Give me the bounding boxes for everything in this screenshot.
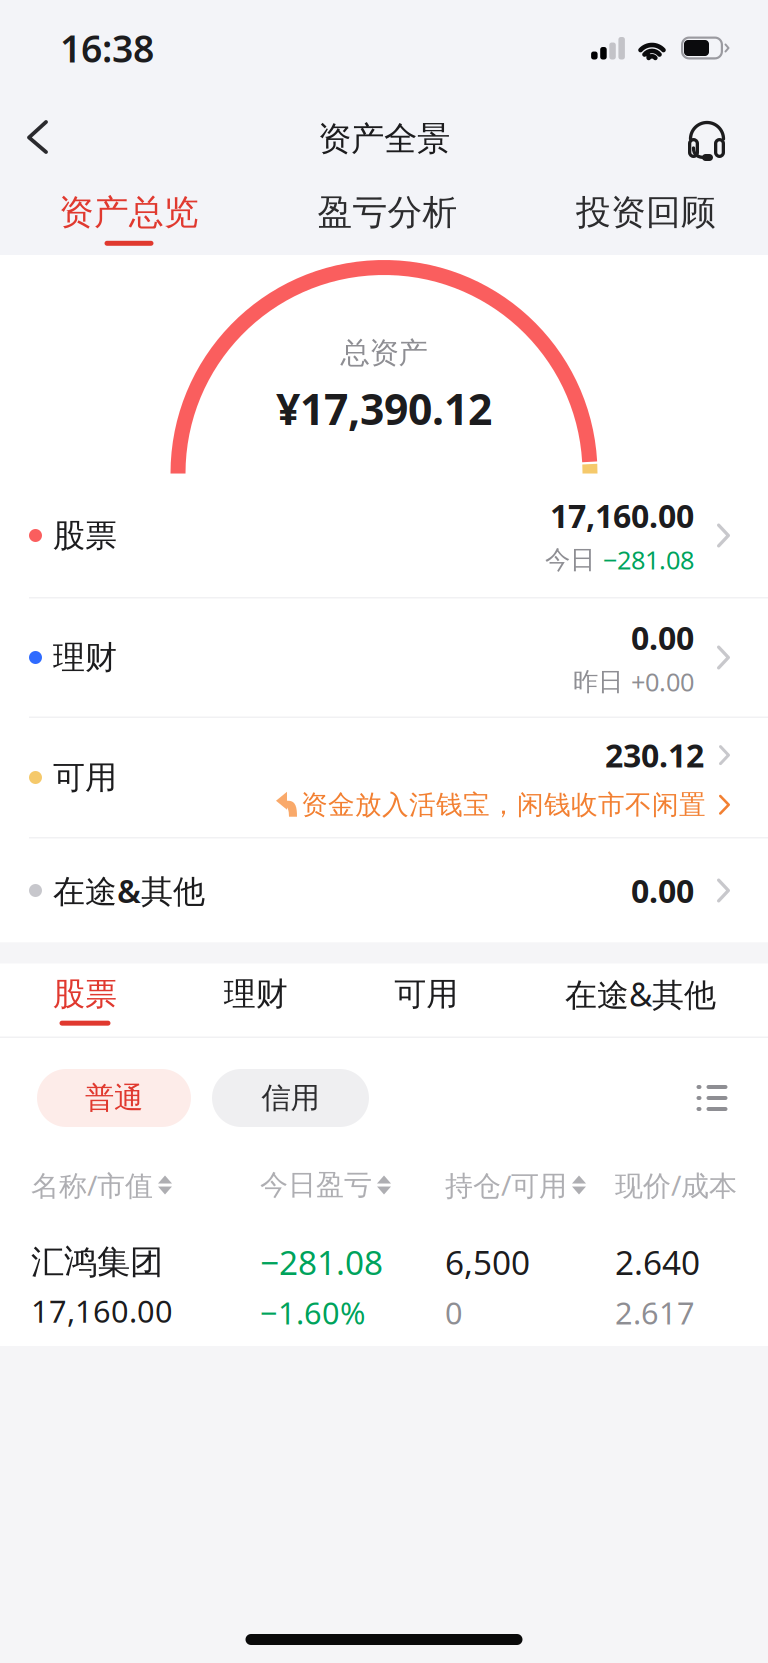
staticText: −1.60% — [260, 1292, 365, 1333]
button[interactable]: 返回 — [4, 96, 76, 182]
button[interactable]: 可用 — [0, 718, 768, 837]
staticText: −281.08 — [603, 543, 694, 576]
staticText: 在途&其他 — [565, 973, 716, 1015]
button[interactable]: 普通 — [37, 1069, 191, 1127]
staticText: +0.00 — [631, 665, 694, 698]
staticText: 0.00 — [631, 616, 694, 659]
staticText: 总资产 — [340, 335, 427, 371]
staticText: 资产全景 — [318, 118, 450, 159]
staticText: 16:38 — [60, 23, 154, 73]
staticText: 理财 — [224, 974, 288, 1014]
staticText: 可用 — [53, 758, 117, 797]
button[interactable]: 在途&其他 — [0, 838, 768, 942]
staticText: 可用 — [394, 974, 458, 1014]
button[interactable]: 客服 — [664, 96, 750, 182]
staticText: 17,160.00 — [550, 494, 694, 537]
button[interactable]: 理财 — [224, 963, 288, 1036]
staticText: 230.12 — [605, 734, 704, 776]
button[interactable]: 股票 — [53, 963, 117, 1036]
staticText: 名称/市值 — [31, 1166, 153, 1204]
staticText: 持仓/可用 — [445, 1166, 567, 1204]
staticText: 2.617 — [615, 1292, 695, 1333]
button[interactable]: 汇鸿集团 — [0, 1227, 768, 1346]
button[interactable]: 名称/市值 — [31, 1143, 260, 1227]
staticText: 理财 — [53, 638, 117, 677]
staticText: −281.08 — [260, 1240, 383, 1284]
staticText: 昨日 — [573, 666, 631, 697]
button[interactable]: 信用 — [212, 1069, 369, 1127]
staticText: 2.640 — [615, 1240, 700, 1284]
button[interactable]: 现价/成本 — [615, 1143, 768, 1227]
staticText: 股票 — [53, 974, 117, 1014]
button[interactable]: 今日盈亏 — [260, 1143, 445, 1227]
staticText: 资产总览 — [59, 191, 199, 234]
staticText: 汇鸿集团 — [31, 1242, 163, 1283]
staticText: 信用 — [261, 1080, 319, 1116]
staticText: 股票 — [53, 516, 117, 555]
button[interactable]: 盈亏分析 — [317, 182, 457, 255]
staticText: 普通 — [85, 1080, 143, 1116]
button[interactable]: 在途&其他 — [565, 963, 716, 1036]
button[interactable]: 持仓/可用 — [445, 1143, 615, 1227]
staticText: 盈亏分析 — [317, 191, 457, 234]
button[interactable]: 投资回顾 — [576, 182, 716, 255]
staticText: 现价/成本 — [615, 1166, 737, 1204]
staticText: 今日 — [545, 544, 603, 575]
staticText: 投资回顾 — [576, 191, 716, 234]
staticText: 17,160.00 — [31, 1291, 173, 1331]
staticText: 0.00 — [631, 869, 694, 912]
button[interactable]: 股票 — [0, 474, 768, 597]
button[interactable]: 理财 — [0, 598, 768, 716]
button[interactable]: 列表设置 — [688, 1074, 736, 1122]
staticText: ¥17,390.12 — [276, 380, 492, 437]
button[interactable]: 资产总览 — [59, 182, 199, 255]
button[interactable]: 可用 — [394, 963, 458, 1036]
staticText: 0 — [445, 1292, 463, 1333]
staticText: 资金放入活钱宝，闲钱收市不闲置 — [301, 788, 706, 821]
staticText: 6,500 — [445, 1240, 530, 1284]
staticText: 今日盈亏 — [260, 1168, 372, 1202]
staticText: 在途&其他 — [53, 869, 205, 912]
